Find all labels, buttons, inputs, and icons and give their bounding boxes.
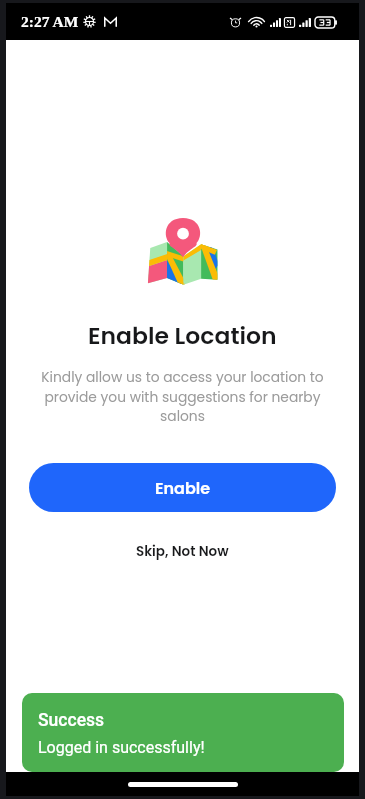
staticText: Logged in successfully! (38, 738, 205, 757)
staticText: Skip, Not Now (136, 542, 229, 561)
staticText: 2:27 AM (21, 13, 79, 30)
button[interactable]: Success (22, 693, 344, 772)
button[interactable]: Enable (29, 463, 336, 512)
staticText: Success (38, 710, 105, 731)
staticText: Enable Location (88, 319, 277, 352)
staticText: Kindly allow us to access your location … (36, 368, 329, 426)
staticText: Enable (155, 477, 211, 499)
button[interactable]: Skip, Not Now (122, 537, 243, 566)
